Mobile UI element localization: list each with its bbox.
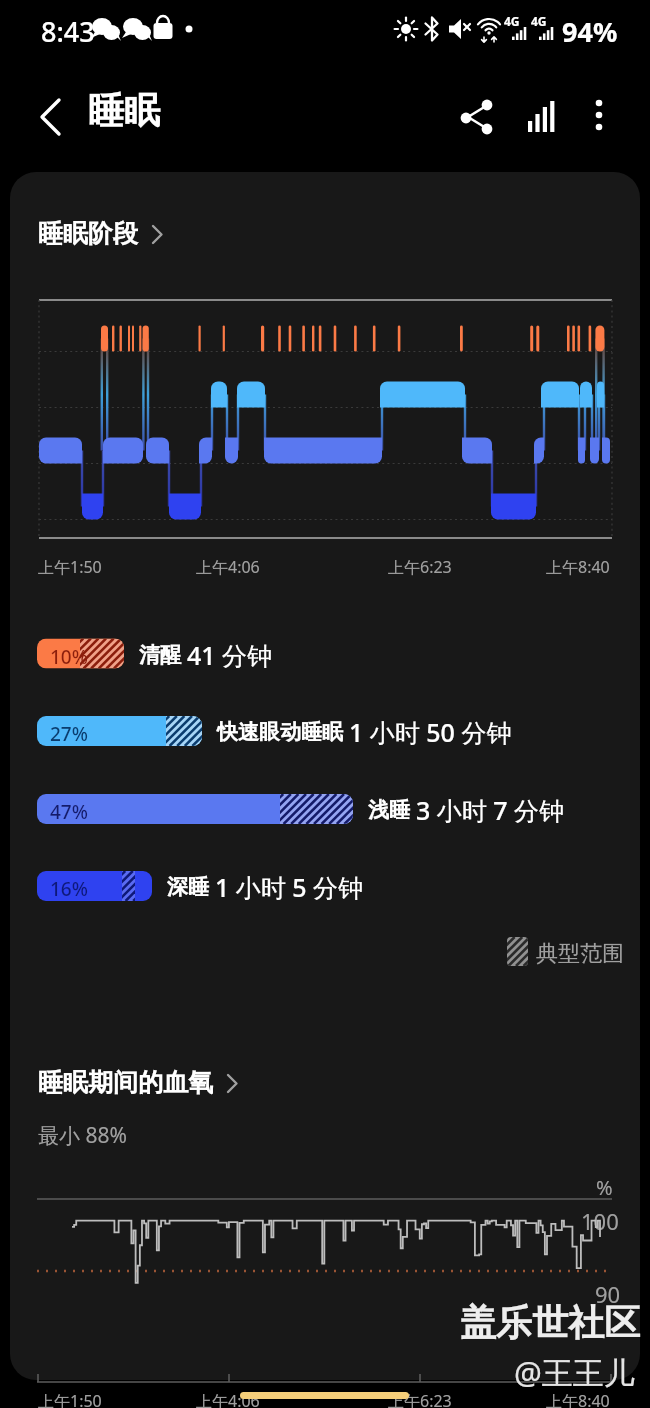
staticText: 浅睡 <box>368 795 416 824</box>
staticText: 90 <box>595 1279 621 1309</box>
staticText: % <box>596 1174 613 1201</box>
button[interactable]: Share <box>452 83 506 137</box>
staticText: 盖乐世社区 <box>460 1300 640 1345</box>
staticText: 4G <box>504 13 520 29</box>
staticText: 上午8:40 <box>546 556 610 578</box>
button[interactable]: 睡眠阶段 <box>30 212 174 255</box>
staticText: 41 分钟 <box>187 638 273 670</box>
staticText: 94% <box>562 13 618 50</box>
staticText: 27% <box>50 721 88 747</box>
staticText: 上午6:23 <box>388 1390 452 1408</box>
staticText: 上午1:50 <box>38 556 102 578</box>
staticText: 10% <box>50 644 88 670</box>
staticText: 100 <box>581 1206 619 1236</box>
button[interactable]: More options <box>575 83 625 133</box>
staticText: 典型范围 <box>536 940 624 968</box>
staticText: 最小 88% <box>38 1121 127 1150</box>
staticText: 上午4:06 <box>196 556 260 578</box>
staticText: 1 小时 50 分钟 <box>349 715 512 747</box>
staticText: 3 小时 7 分钟 <box>416 793 565 825</box>
staticText: 睡眠期间的血氧 <box>38 1067 213 1098</box>
staticText: 上午8:40 <box>546 1390 610 1408</box>
staticText: 1 小时 5 分钟 <box>215 870 364 902</box>
staticText: 上午1:50 <box>38 1390 102 1408</box>
button[interactable]: Back <box>22 83 82 143</box>
staticText: 16% <box>50 876 88 902</box>
staticText: @王王儿 <box>514 1351 635 1393</box>
staticText: 47% <box>50 799 88 825</box>
staticText: 深睡 <box>167 872 215 901</box>
staticText: 快速眼动睡眠 <box>217 717 349 746</box>
staticText: 睡眠阶段 <box>38 218 138 249</box>
staticText: 上午6:23 <box>388 556 452 578</box>
button[interactable]: Statistics <box>516 83 570 137</box>
staticText: 8:43 <box>41 13 95 50</box>
staticText: 清醒 <box>139 640 187 669</box>
staticText: 睡眠 <box>88 88 160 133</box>
staticText: 4G <box>531 13 547 29</box>
staticText: 上午4:06 <box>196 1390 260 1408</box>
button[interactable]: 睡眠期间的血氧 <box>30 1061 249 1104</box>
